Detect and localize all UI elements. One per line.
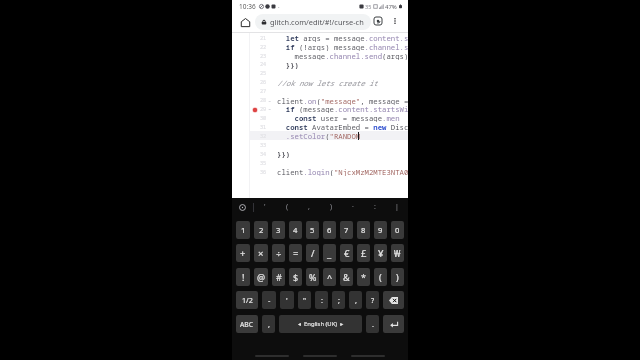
staticText: 3 xyxy=(276,225,281,235)
button[interactable]: 6 xyxy=(323,221,336,239)
button[interactable]: Navigation xyxy=(298,352,342,360)
button[interactable]: Navigation xyxy=(346,352,390,360)
staticText: £ xyxy=(361,247,367,260)
button[interactable]: | xyxy=(386,198,408,216)
staticText: - xyxy=(268,295,271,305)
button[interactable]: 1 xyxy=(236,221,250,239)
staticText: 8 xyxy=(361,225,366,235)
staticText: @ xyxy=(257,271,266,283)
staticText: if (message.content.startsWi xyxy=(277,104,408,113)
staticText: , xyxy=(268,319,270,329)
staticText: 1/2 xyxy=(242,295,253,305)
button[interactable]: 8 xyxy=(357,221,370,239)
button[interactable]: = xyxy=(289,244,302,262)
staticText: · xyxy=(352,202,354,212)
button[interactable]: ^ xyxy=(323,268,336,286)
button[interactable]: , xyxy=(298,198,320,216)
button[interactable]: ; xyxy=(332,291,345,309)
staticText: ◂ English (UK) ▸ xyxy=(298,320,344,328)
staticText: 32 xyxy=(260,132,267,139)
button[interactable]: ' xyxy=(280,291,294,309)
staticText: 47% xyxy=(385,3,397,11)
staticText: / xyxy=(311,247,315,260)
button[interactable]: ¥ xyxy=(374,244,387,262)
button[interactable]: $ xyxy=(289,268,302,286)
staticText: ( xyxy=(379,271,382,283)
staticText: · xyxy=(278,3,280,11)
button[interactable]: 4 xyxy=(289,221,302,239)
button[interactable]: € xyxy=(340,244,353,262)
button[interactable]: ₩ xyxy=(391,244,404,262)
staticText: 7 xyxy=(344,225,349,235)
button[interactable]: ( xyxy=(276,198,298,216)
button[interactable]: Google Lens xyxy=(370,13,386,29)
button[interactable]: Enter xyxy=(383,315,404,333)
button[interactable]: 3 xyxy=(272,221,285,239)
button[interactable]: - xyxy=(262,291,276,309)
staticText: ) xyxy=(330,202,333,212)
button[interactable]: @ xyxy=(254,268,268,286)
staticText: }}) xyxy=(277,149,291,158)
button[interactable]: & xyxy=(340,268,353,286)
button[interactable]: : xyxy=(364,198,386,216)
staticText: 0 xyxy=(395,225,400,235)
staticText: 30 xyxy=(260,114,267,121)
button[interactable]: ? xyxy=(366,291,379,309)
button[interactable]: Navigation xyxy=(250,352,294,360)
button[interactable]: _ xyxy=(323,244,336,262)
staticText: * xyxy=(361,271,366,283)
staticText: , xyxy=(308,202,310,212)
button[interactable]: , xyxy=(262,315,275,333)
button[interactable]: Backspace xyxy=(383,291,404,309)
staticText: client.on("message", message = xyxy=(277,96,408,105)
button[interactable]: £ xyxy=(357,244,370,262)
staticText: //ok now lets create it xyxy=(277,78,378,87)
button[interactable]: Home xyxy=(236,13,254,31)
button[interactable]: × xyxy=(254,244,268,262)
button[interactable]: : xyxy=(315,291,328,309)
button[interactable]: 0 xyxy=(391,221,404,239)
button[interactable]: " xyxy=(298,291,311,309)
staticText: 10:36 xyxy=(239,2,256,11)
staticText: _ xyxy=(327,247,332,260)
staticText: 21 xyxy=(260,34,267,41)
button[interactable]: ) xyxy=(320,198,342,216)
staticText: .setColor("RANDOM xyxy=(277,131,361,140)
staticText: | xyxy=(395,202,399,212)
button[interactable]: + xyxy=(236,244,250,262)
button[interactable]: ◂ English (UK) ▸ xyxy=(279,315,362,333)
staticText: const user = message.men xyxy=(277,113,400,122)
button[interactable]: · xyxy=(342,198,364,216)
staticText: 28 xyxy=(260,96,267,103)
button[interactable]: * xyxy=(357,268,370,286)
button[interactable]: . xyxy=(366,315,379,333)
staticText: : xyxy=(321,295,323,305)
staticText: 26 xyxy=(260,78,267,85)
staticText: 33 xyxy=(260,141,267,148)
button[interactable]: ! xyxy=(236,268,250,286)
staticText: 35 xyxy=(260,159,267,166)
button[interactable]: / xyxy=(306,244,319,262)
staticText: 4 xyxy=(293,225,298,235)
button[interactable]: , xyxy=(349,291,362,309)
button[interactable]: ÷ xyxy=(272,244,285,262)
button[interactable]: 2 xyxy=(254,221,268,239)
button[interactable]: 7 xyxy=(340,221,353,239)
button[interactable]: More options xyxy=(387,13,403,29)
staticText: glitch.com/edit/#!/curse-ch xyxy=(270,17,364,27)
button[interactable]: ( xyxy=(374,268,387,286)
staticText: & xyxy=(343,271,350,283)
staticText: ' xyxy=(286,295,288,305)
button[interactable]: ) xyxy=(391,268,404,286)
button[interactable]: % xyxy=(306,268,319,286)
button[interactable]: 9 xyxy=(374,221,387,239)
staticText: 6 xyxy=(327,225,332,235)
button[interactable]: glitch.com/edit/#!/curse-ch xyxy=(255,14,371,30)
button[interactable]: ' xyxy=(254,198,276,216)
button[interactable]: # xyxy=(272,268,285,286)
button[interactable]: 1/2 xyxy=(236,291,258,309)
button[interactable]: 5 xyxy=(306,221,319,239)
button[interactable]: Emoji xyxy=(232,198,253,216)
staticText: message.channel.send(args) xyxy=(277,51,408,60)
button[interactable]: ABC xyxy=(236,315,258,333)
